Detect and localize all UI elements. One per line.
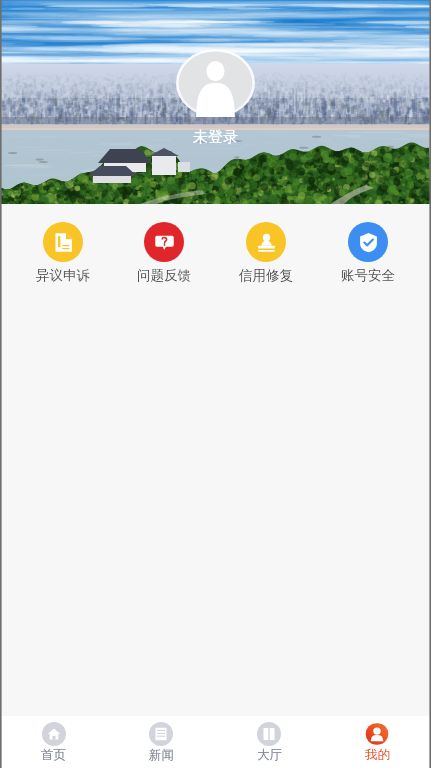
staticText: 异议申诉 — [36, 267, 90, 284]
staticText: 大厅 — [257, 747, 282, 763]
staticText: 信用修复 — [239, 267, 293, 284]
staticText: 新闻 — [149, 747, 174, 763]
staticText: 账号安全 — [341, 267, 395, 284]
button[interactable]: 首页 — [0, 716, 107, 768]
button[interactable]: 问题反馈 — [113, 204, 215, 284]
button[interactable]: Avatar — [176, 49, 255, 117]
button[interactable]: 账号安全 — [317, 204, 419, 284]
button[interactable]: 异议申诉 — [12, 204, 113, 284]
staticText: 我的 — [365, 747, 390, 763]
staticText: 未登录 — [193, 128, 238, 147]
staticText: 首页 — [41, 747, 66, 763]
button[interactable]: 新闻 — [107, 716, 215, 768]
button[interactable]: 大厅 — [215, 716, 323, 768]
staticText: 问题反馈 — [137, 267, 191, 284]
button[interactable]: 信用修复 — [215, 204, 317, 284]
button[interactable]: 我的 — [323, 716, 431, 768]
